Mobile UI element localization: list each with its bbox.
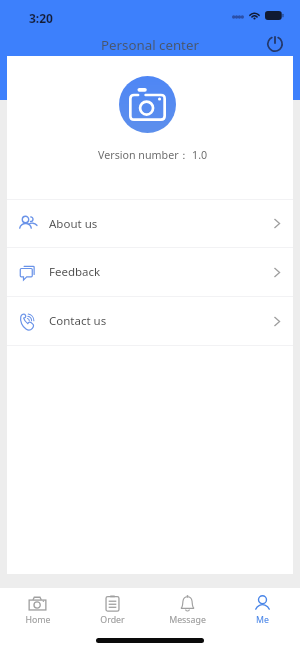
staticText: Home [25,614,51,626]
button[interactable]: Contact us [7,297,293,345]
staticText: Personal center [101,36,199,54]
button[interactable]: Message [150,588,225,649]
staticText: Feedback [49,264,101,280]
staticText: About us [49,216,98,232]
button[interactable]: Home [0,588,75,649]
staticText: Message [169,614,206,626]
staticText: Order [100,614,125,626]
button[interactable]: Feedback [7,248,293,296]
staticText: Contact us [49,313,107,329]
staticText: Version number： 1.0 [98,148,208,163]
button[interactable]: Me [225,588,300,649]
button[interactable]: About us [7,200,293,247]
button[interactable]: Change avatar [119,76,176,133]
button[interactable]: Log out [263,33,287,55]
staticText: Me [256,614,269,626]
staticText: 3:20 [29,10,53,26]
button[interactable]: Order [75,588,150,649]
